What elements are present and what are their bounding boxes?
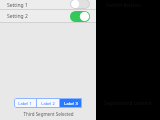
staticText: Label 3	[64, 101, 78, 106]
button[interactable]: Label 3	[60, 98, 82, 108]
button[interactable]: Label 2	[37, 98, 59, 108]
button[interactable]: Label 1	[14, 98, 36, 108]
staticText: Label 1	[18, 101, 32, 106]
staticText: Third Segment Selected	[23, 111, 74, 117]
button[interactable]: Setting 2	[0, 10, 96, 23]
button[interactable]: Switch off	[70, 0, 90, 9]
staticText: Segmented control	[104, 100, 152, 107]
button[interactable]: Setting 1	[0, 0, 96, 10]
staticText: Switch button	[106, 2, 141, 9]
staticText: Label 2	[41, 101, 55, 106]
staticText: Setting 1	[7, 2, 28, 9]
button[interactable]: Switch on	[70, 11, 90, 22]
staticText: Setting 2	[7, 13, 28, 20]
